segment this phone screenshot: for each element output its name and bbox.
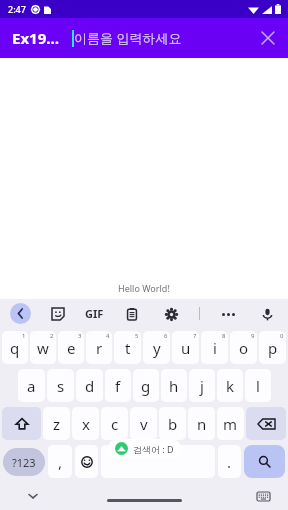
staticText: x [82,414,90,434]
button[interactable]: Settings [160,303,182,325]
button[interactable]: e [58,331,84,364]
button[interactable]: d [76,369,103,402]
button[interactable]: q [2,331,28,364]
staticText: 8 [222,332,226,340]
staticText: m [223,414,238,434]
button[interactable]: Search [244,445,285,478]
staticText: y [153,338,161,358]
button[interactable]: w [30,331,56,364]
button[interactable]: Switch keyboard [253,486,273,506]
button[interactable]: Space [101,445,215,478]
button[interactable]: s [47,369,74,402]
staticText: 9 [251,332,255,340]
button[interactable]: Emoji [75,445,98,478]
staticText: n [197,414,207,434]
button[interactable]: Hide keyboard [23,486,43,506]
staticText: 이름을 입력하세요 [74,29,182,47]
staticText: 4 [106,332,110,340]
button[interactable]: y [143,331,170,364]
button[interactable]: j [189,369,215,402]
button[interactable]: h [161,369,187,402]
button[interactable]: Clear [256,26,280,50]
staticText: 6 [164,332,168,340]
button[interactable]: More options [217,303,239,325]
staticText: 1 [22,332,26,340]
button[interactable]: , [48,445,72,478]
staticText: . [227,452,232,472]
staticText: t [125,338,131,358]
button[interactable]: o [230,331,257,364]
button[interactable]: i [201,331,228,364]
staticText: p [268,338,278,358]
staticText: h [169,376,179,396]
staticText: r [96,338,103,358]
staticText: v [140,414,148,434]
staticText: f [115,376,121,396]
staticText: a [27,376,36,396]
staticText: 2:47 [8,3,26,15]
button[interactable]: . [218,445,241,478]
button[interactable]: z [43,407,70,440]
button[interactable]: Back [10,303,31,324]
staticText: b [168,414,178,434]
staticText: s [57,376,65,396]
staticText: j [200,376,204,396]
staticText: GIF [85,306,104,321]
staticText: c [111,414,119,434]
staticText: 3 [78,332,82,340]
button[interactable]: m [217,407,244,440]
staticText: u [181,338,191,358]
staticText: , [58,452,63,472]
staticText: o [239,338,249,358]
button[interactable]: x [72,407,99,440]
button[interactable]: t [114,331,141,364]
button[interactable]: v [130,407,157,440]
button[interactable]: Stickers [47,303,69,325]
staticText: g [141,376,151,396]
button[interactable]: u [172,331,199,364]
staticText: 2 [50,332,54,340]
staticText: 0 [280,332,284,340]
button[interactable]: GIF [85,306,104,321]
button[interactable]: b [159,407,186,440]
staticText: d [85,376,95,396]
staticText: q [10,338,20,358]
button[interactable]: k [217,369,243,402]
staticText: w [37,338,49,358]
button[interactable]: Clipboard [121,303,143,325]
button[interactable]: r [86,331,112,364]
button[interactable]: Shift [2,407,41,440]
staticText: e [67,338,76,358]
button[interactable]: l [245,369,271,402]
button[interactable]: ?123 [3,448,45,476]
button[interactable]: f [105,369,131,402]
staticText: 5 [135,332,139,340]
staticText: Ex19… [12,28,60,48]
button[interactable]: 검색어 : D [115,442,174,455]
staticText: ?123 [12,455,36,470]
staticText: l [256,376,260,396]
button[interactable]: a [18,369,45,402]
button[interactable]: c [101,407,128,440]
button[interactable]: Voice input [256,303,278,325]
staticText: i [213,338,217,358]
button[interactable]: g [133,369,159,402]
staticText: 검색어 : D [133,443,174,455]
staticText: Hello World! [118,282,170,294]
staticText: k [226,376,235,396]
staticText: z [53,414,61,434]
button[interactable]: n [188,407,215,440]
staticText: 7 [193,332,197,340]
button[interactable]: p [259,331,286,364]
button[interactable]: Backspace [246,407,286,440]
